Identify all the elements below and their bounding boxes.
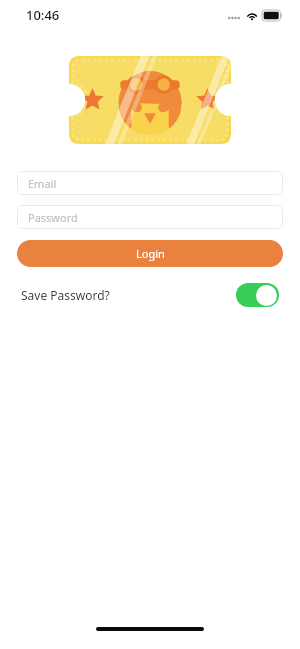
staticText: Email: [28, 176, 57, 191]
button[interactable]: Save password toggle, on: [236, 283, 279, 307]
button[interactable]: Save Password?: [21, 281, 279, 309]
button[interactable]: Login: [17, 240, 283, 267]
staticText: Save Password?: [21, 287, 110, 303]
staticText: 10:46: [26, 6, 60, 24]
staticText: Password: [28, 210, 78, 225]
other: Ticket logo: [69, 56, 231, 144]
button[interactable]: Email: [17, 171, 283, 195]
staticText: Login: [136, 246, 165, 261]
button[interactable]: Password: [17, 205, 283, 229]
